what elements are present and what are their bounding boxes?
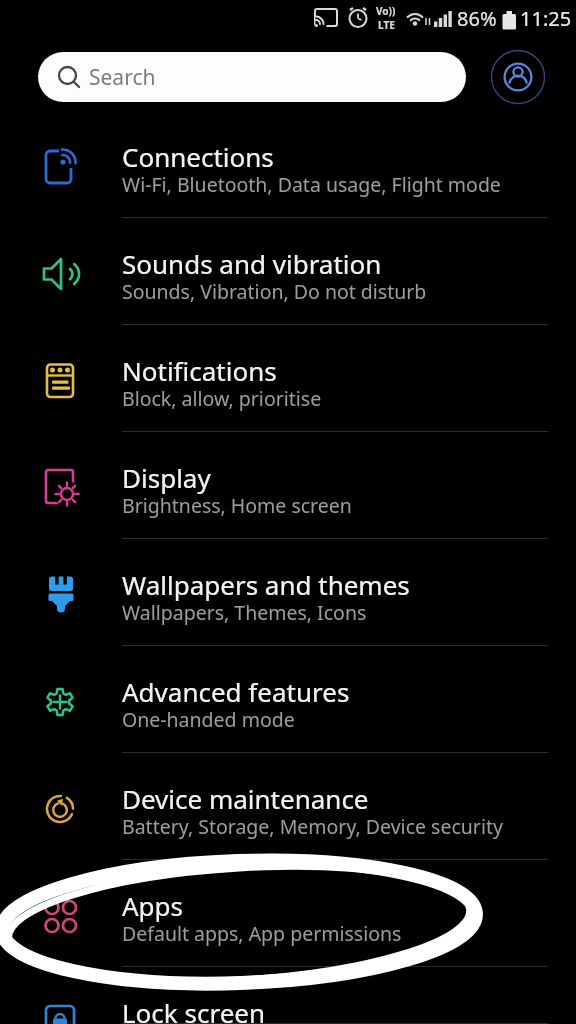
staticText: Wallpapers and themes	[122, 567, 410, 602]
button[interactable]: Display	[0, 432, 576, 539]
staticText: Sounds and vibration	[122, 246, 382, 281]
button[interactable]: Wallpapers and themes	[0, 539, 576, 646]
staticText: 11:25	[520, 5, 572, 32]
staticText: Device maintenance	[122, 781, 369, 816]
button[interactable]: Sounds and vibration	[0, 218, 576, 325]
staticText: Lock screen	[122, 995, 266, 1024]
staticText: Default apps, App permissions	[122, 920, 402, 947]
staticText: One-handed mode	[122, 706, 295, 733]
button[interactable]: Search	[38, 52, 466, 102]
button[interactable]: Advanced features	[0, 646, 576, 753]
button[interactable]: Lock screen	[0, 967, 576, 1024]
staticText: Notifications	[122, 353, 277, 388]
staticText: Advanced features	[122, 674, 350, 709]
button[interactable]	[490, 49, 546, 105]
staticText: Battery, Storage, Memory, Device securit…	[122, 813, 503, 840]
staticText: 86%	[457, 5, 497, 32]
staticText: Block, allow, prioritise	[122, 385, 322, 412]
button[interactable]: Connections	[0, 111, 576, 218]
button[interactable]: Apps	[0, 860, 576, 967]
staticText: LTE	[378, 18, 395, 32]
staticText: Connections	[122, 139, 274, 174]
staticText: Display	[122, 460, 211, 495]
staticText: Wallpapers, Themes, Icons	[122, 599, 367, 626]
staticText: Wi-Fi, Bluetooth, Data usage, Flight mod…	[122, 171, 501, 198]
staticText: Search	[89, 63, 156, 92]
staticText: Apps	[122, 888, 184, 923]
staticText: Sounds, Vibration, Do not disturb	[122, 278, 427, 305]
staticText: Vo))	[376, 4, 396, 18]
button[interactable]: Notifications	[0, 325, 576, 432]
staticText: Brightness, Home screen	[122, 492, 352, 519]
button[interactable]: Device maintenance	[0, 753, 576, 860]
